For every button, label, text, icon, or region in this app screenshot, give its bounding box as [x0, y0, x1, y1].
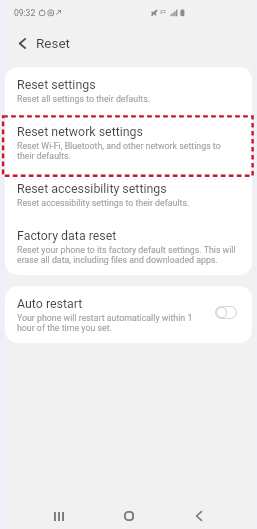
button[interactable]: Auto restart [5, 286, 252, 343]
staticText: Reset accessibility settings [17, 182, 167, 196]
button[interactable]: Home [105, 503, 153, 529]
button[interactable]: Reset settings [5, 67, 252, 114]
staticText: Reset network settings [17, 125, 143, 139]
staticText: Auto restart [17, 297, 83, 311]
button[interactable]: Reset network settings [5, 114, 252, 171]
staticText: Reset settings [17, 78, 96, 92]
staticText: Factory data reset [17, 229, 117, 243]
button[interactable]: Back [175, 503, 223, 529]
button[interactable]: Reset accessibility settings [5, 171, 252, 218]
staticText: Reset your phone to its factory default … [17, 245, 237, 265]
staticText: 09:32 [14, 8, 36, 18]
staticText: Your phone will restart automatically wi… [17, 313, 209, 333]
staticText: Reset accessibility settings to their de… [17, 198, 190, 208]
button[interactable]: Factory data reset [5, 218, 252, 275]
staticText: Reset [36, 35, 71, 51]
staticText: Reset all settings to their defaults. [17, 94, 151, 104]
button[interactable]: Recent apps [35, 503, 83, 529]
button[interactable]: Auto restart [215, 306, 237, 319]
staticText: Reset Wi-Fi, Bluetooth, and other networ… [17, 141, 237, 161]
button[interactable]: Navigate up [10, 31, 34, 55]
